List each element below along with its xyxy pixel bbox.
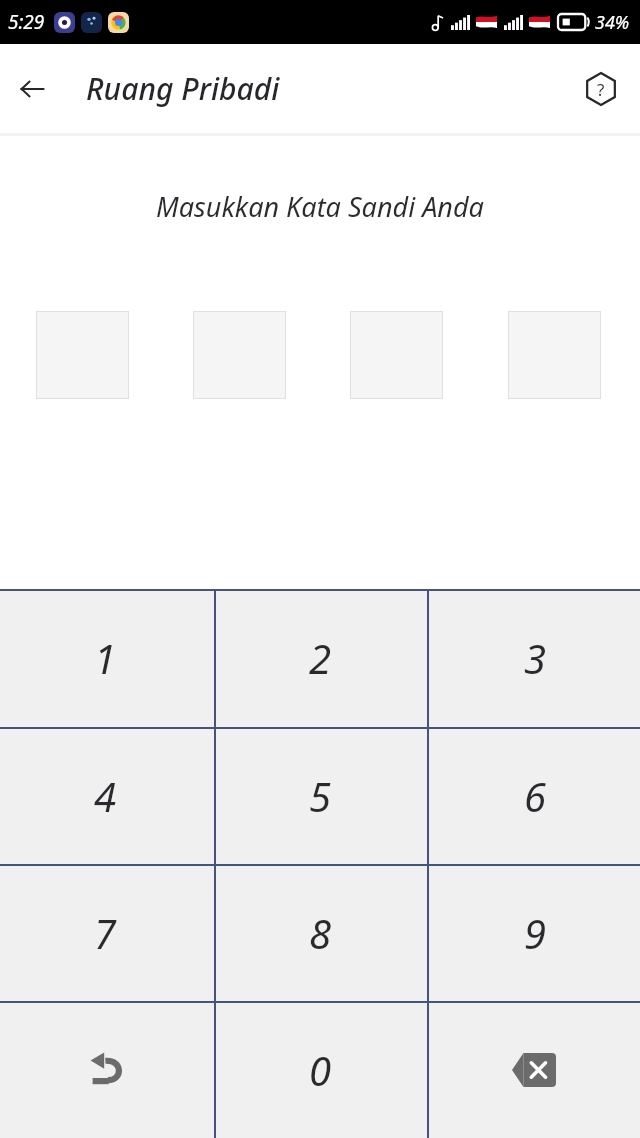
other: Backspace: [427, 1001, 640, 1138]
staticText: 9: [524, 906, 547, 960]
button[interactable]: 7: [0, 864, 214, 1001]
button[interactable]: 1: [0, 589, 214, 727]
staticText: Masukkan Kata Sandi Anda: [0, 188, 640, 225]
button[interactable]: 3: [427, 589, 640, 727]
staticText: 34%: [595, 10, 630, 35]
other: Undo: [0, 1001, 214, 1138]
button[interactable]: [350, 311, 443, 399]
staticText: 8: [309, 906, 332, 960]
button[interactable]: 8: [214, 864, 427, 1001]
button[interactable]: Back: [8, 65, 56, 113]
staticText: Ruang Pribadi: [86, 68, 280, 109]
button[interactable]: 4: [0, 727, 214, 864]
staticText: 7: [94, 906, 117, 960]
button[interactable]: [36, 311, 129, 399]
button[interactable]: 6: [427, 727, 640, 864]
staticText: 5:29: [8, 9, 45, 35]
button[interactable]: Undo: [0, 1001, 214, 1138]
staticText: 0: [309, 1043, 332, 1097]
button[interactable]: Backspace: [427, 1001, 640, 1138]
staticText: 4: [94, 769, 117, 823]
staticText: ?: [597, 78, 605, 101]
staticText: 2: [309, 631, 332, 685]
staticText: 6: [524, 769, 547, 823]
button[interactable]: [193, 311, 286, 399]
staticText: 3: [524, 631, 547, 685]
button[interactable]: 0: [214, 1001, 427, 1138]
button[interactable]: 2: [214, 589, 427, 727]
button[interactable]: 9: [427, 864, 640, 1001]
staticText: 1: [94, 631, 117, 685]
button[interactable]: Help: [578, 66, 624, 112]
staticText: 5: [309, 769, 332, 823]
button[interactable]: 5: [214, 727, 427, 864]
button[interactable]: [508, 311, 601, 399]
